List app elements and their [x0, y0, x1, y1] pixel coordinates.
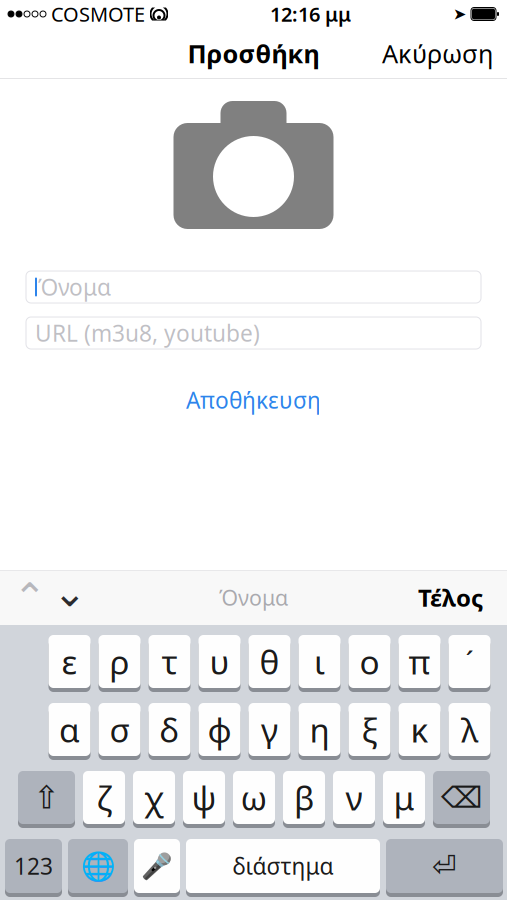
button[interactable]: ⌫ [433, 771, 490, 825]
staticText: δ [159, 707, 179, 752]
button[interactable]: ⇧ [18, 771, 75, 825]
staticText: διάστημα [232, 851, 333, 881]
staticText: λ [461, 707, 478, 752]
staticText: Αποθήκευση [186, 385, 321, 415]
staticText: ρ [109, 639, 129, 684]
staticText: σ [109, 707, 129, 752]
button[interactable]: 123 [5, 839, 62, 894]
button[interactable]: α [48, 703, 90, 757]
button[interactable]: Previous field [10, 577, 50, 617]
staticText: 12:16 μμ [270, 1, 351, 27]
staticText: χ [144, 775, 164, 820]
button[interactable]: Next field [50, 572, 90, 622]
button[interactable]: ω [233, 771, 275, 825]
staticText: Προσθήκη [187, 37, 319, 70]
button[interactable]: μ [383, 771, 425, 825]
button[interactable]: ξ [348, 703, 390, 757]
staticText: φ [207, 707, 231, 752]
button[interactable]: κ [398, 703, 440, 757]
button[interactable]: Τέλος [404, 574, 497, 621]
staticText: ω [240, 775, 267, 820]
button[interactable]: θ [248, 635, 290, 689]
button[interactable]: Ακύρωση [368, 29, 507, 78]
staticText: ⌄ [53, 570, 87, 615]
staticText: ο [359, 639, 379, 684]
staticText: Τέλος [418, 582, 483, 613]
button[interactable]: 🌐 [68, 839, 128, 894]
staticText: Όνομα [219, 583, 288, 612]
button[interactable]: δ [148, 703, 190, 757]
button[interactable]: διάστημα [186, 839, 380, 894]
button[interactable]: σ [98, 703, 140, 757]
staticText: Ακύρωση [382, 37, 493, 70]
button[interactable]: 🎤 [134, 839, 180, 894]
button[interactable]: ν [333, 771, 375, 825]
staticText: μ [393, 775, 414, 820]
staticText: ζ [96, 775, 111, 820]
staticText: κ [410, 707, 428, 752]
staticText: ν [345, 775, 362, 820]
button[interactable]: ο [348, 635, 390, 689]
staticText: η [309, 707, 329, 752]
staticText: ⇧ [33, 779, 60, 816]
staticText: ι [314, 639, 325, 684]
button[interactable]: γ [248, 703, 290, 757]
staticText: ⌫ [441, 781, 482, 814]
staticText: ψ [191, 775, 216, 820]
staticText: 123 [14, 851, 53, 881]
button[interactable]: ´ [448, 635, 490, 689]
staticText: α [59, 707, 80, 752]
button[interactable]: η [298, 703, 340, 757]
button[interactable]: ⏎ [386, 839, 503, 894]
button[interactable]: Αποθήκευση [166, 377, 341, 423]
staticText: 🎤 [141, 851, 173, 880]
staticText: ⏎ [432, 849, 457, 883]
staticText: β [294, 775, 314, 820]
button[interactable]: ζ [83, 771, 125, 825]
staticText: π [408, 639, 430, 684]
staticText: ➤ [453, 5, 466, 23]
staticText: ε [61, 639, 77, 684]
staticText: γ [261, 707, 278, 752]
staticText: θ [259, 639, 279, 684]
staticText: υ [209, 639, 229, 684]
staticText: COSMOTE [46, 1, 145, 27]
button[interactable]: ρ [98, 635, 140, 689]
button[interactable]: β [283, 771, 325, 825]
button[interactable]: χ [133, 771, 175, 825]
staticText: ´ [465, 642, 473, 681]
button[interactable]: φ [198, 703, 240, 757]
staticText: Όνομα [38, 272, 111, 302]
staticText: ξ [361, 707, 377, 752]
staticText: τ [161, 639, 177, 684]
button[interactable]: ι [298, 635, 340, 689]
staticText: URL (m3u8, youtube) [35, 318, 260, 348]
staticText: 🌐 [80, 850, 115, 882]
button[interactable]: π [398, 635, 440, 689]
button[interactable]: τ [148, 635, 190, 689]
button[interactable]: ε [48, 635, 90, 689]
button[interactable]: ψ [183, 771, 225, 825]
button[interactable]: λ [448, 703, 490, 757]
staticText: ⌃ [13, 575, 47, 620]
button[interactable]: υ [198, 635, 240, 689]
